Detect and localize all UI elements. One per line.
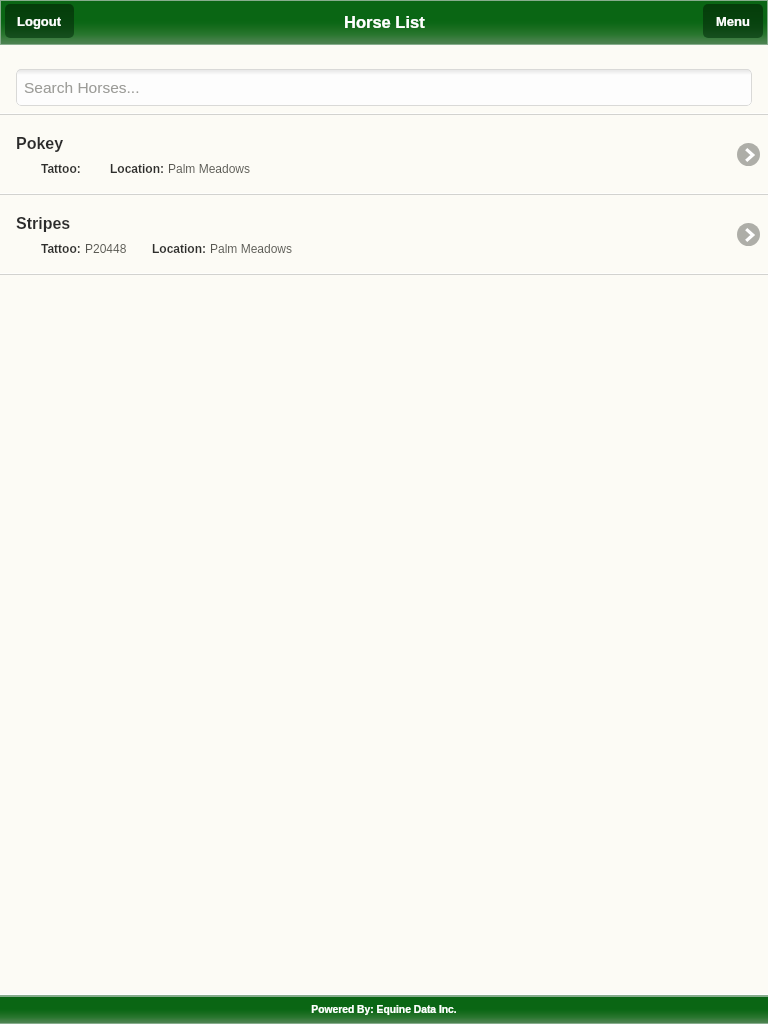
button[interactable]: Menu — [703, 4, 763, 38]
staticText: Pokey — [16, 135, 64, 153]
staticText: Menu — [716, 14, 750, 29]
button[interactable]: Stripes — [0, 195, 768, 273]
staticText: Stripes — [16, 215, 71, 233]
staticText: Palm Meadows — [168, 162, 251, 175]
button[interactable]: Pokey — [0, 115, 768, 193]
button[interactable]: Search Horses... — [16, 69, 752, 106]
staticText: Horse List — [344, 13, 425, 31]
staticText: Powered By: Equine Data Inc. — [311, 1004, 457, 1016]
staticText: P20448 — [85, 242, 127, 255]
staticText: Location: — [110, 162, 168, 175]
staticText: Palm Meadows — [210, 242, 293, 255]
other: Open Stripes — [737, 223, 760, 246]
staticText: Search Horses... — [24, 79, 140, 96]
button[interactable]: Logout — [5, 4, 74, 38]
staticText: Logout — [17, 14, 62, 29]
staticText: Tattoo: — [41, 242, 85, 255]
other: Open Pokey — [737, 143, 760, 166]
staticText: Location: — [152, 242, 210, 255]
staticText: Tattoo: — [41, 162, 85, 175]
